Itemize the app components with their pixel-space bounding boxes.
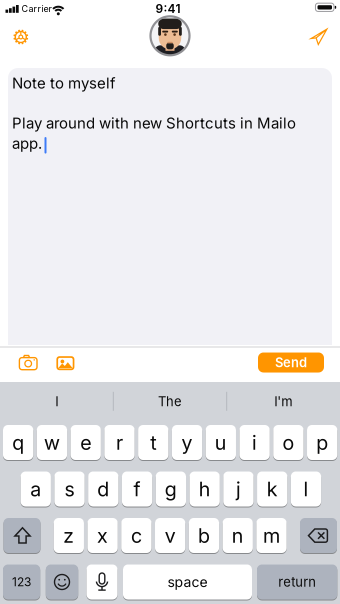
staticText: m: [263, 524, 280, 547]
button[interactable]: 123: [3, 564, 40, 599]
staticText: e: [80, 431, 91, 454]
button[interactable]: d: [88, 471, 118, 506]
button[interactable]: [150, 16, 189, 55]
button[interactable]: [303, 21, 333, 51]
button[interactable]: v: [155, 518, 185, 553]
button[interactable]: a: [21, 471, 51, 506]
button[interactable]: i: [239, 425, 270, 460]
button[interactable]: l: [291, 471, 321, 506]
staticText: b: [198, 524, 210, 547]
button[interactable]: k: [257, 471, 287, 506]
button[interactable]: [46, 564, 78, 599]
button[interactable]: [300, 518, 337, 553]
staticText: w: [44, 431, 60, 454]
staticText: f: [134, 477, 141, 501]
staticText: q: [12, 431, 24, 454]
staticText: Play around with new Shortcuts in Mailo: [12, 114, 296, 132]
button[interactable]: [55, 355, 75, 371]
button[interactable]: t: [138, 425, 168, 460]
button[interactable]: [3, 518, 40, 553]
staticText: space: [167, 574, 207, 590]
staticText: I'm: [274, 394, 292, 409]
staticText: r: [116, 431, 123, 454]
staticText: Send: [275, 355, 307, 370]
button[interactable]: return: [257, 564, 337, 599]
button[interactable]: b: [189, 518, 219, 553]
button[interactable]: space: [123, 564, 252, 599]
button[interactable]: z: [54, 518, 84, 553]
staticText: o: [282, 431, 294, 454]
button[interactable]: y: [172, 425, 202, 460]
staticText: j: [236, 477, 241, 501]
staticText: 123: [12, 575, 31, 589]
staticText: a: [30, 477, 41, 501]
button[interactable]: c: [121, 518, 151, 553]
button[interactable]: s: [54, 471, 85, 506]
staticText: return: [278, 574, 316, 590]
button[interactable]: I'm: [228, 382, 338, 420]
staticText: s: [64, 477, 74, 501]
staticText: v: [165, 524, 176, 547]
staticText: i: [252, 431, 257, 454]
button[interactable]: [86, 564, 117, 599]
button[interactable]: [7, 23, 35, 51]
staticText: k: [267, 477, 278, 501]
staticText: z: [63, 524, 74, 547]
button[interactable]: m: [256, 518, 287, 553]
staticText: n: [232, 524, 244, 547]
button[interactable]: e: [71, 425, 101, 460]
staticText: I: [55, 394, 58, 409]
staticText: l: [303, 477, 308, 501]
button[interactable]: h: [189, 471, 220, 506]
staticText: u: [215, 431, 227, 454]
button[interactable]: r: [104, 425, 135, 460]
button[interactable]: n: [223, 518, 253, 553]
staticText: d: [97, 477, 109, 501]
staticText: h: [199, 477, 211, 501]
staticText: c: [131, 524, 142, 547]
staticText: Note to myself: [12, 74, 116, 92]
staticText: The: [158, 394, 182, 409]
button[interactable]: x: [87, 518, 118, 553]
button[interactable]: u: [206, 425, 236, 460]
button[interactable]: I: [2, 382, 112, 420]
button[interactable]: g: [156, 471, 186, 506]
staticText: 9:41: [155, 1, 180, 16]
button[interactable]: w: [37, 425, 67, 460]
staticText: Carrier: [21, 3, 51, 14]
button[interactable]: p: [307, 425, 337, 460]
button[interactable]: [17, 354, 39, 372]
button[interactable]: Send: [258, 352, 324, 372]
button[interactable]: o: [273, 425, 303, 460]
staticText: y: [182, 431, 193, 454]
staticText: p: [316, 431, 328, 454]
button[interactable]: q: [3, 425, 33, 460]
button[interactable]: The: [115, 382, 225, 420]
staticText: g: [165, 477, 177, 501]
staticText: app.: [12, 134, 42, 152]
button[interactable]: f: [122, 471, 152, 506]
button[interactable]: j: [223, 471, 254, 506]
staticText: t: [150, 431, 156, 454]
staticText: x: [97, 524, 108, 547]
